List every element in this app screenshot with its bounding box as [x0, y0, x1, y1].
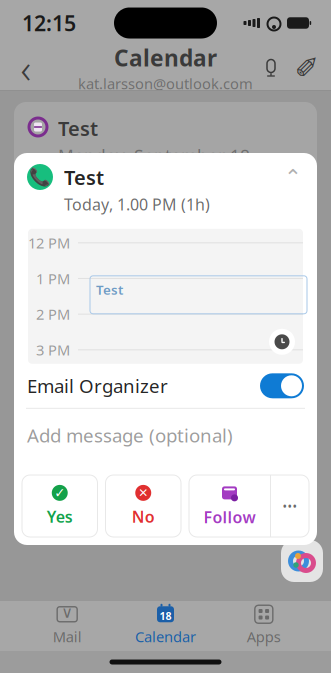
button[interactable]: Email Organizer — [14, 364, 317, 408]
staticText: Add message (optional) — [27, 423, 233, 448]
staticText: Here’s information you might find releva… — [28, 243, 304, 289]
staticText: 📞 — [29, 167, 51, 187]
button[interactable]: Follow — [189, 475, 270, 537]
staticText: Test — [64, 164, 104, 191]
staticText: 2 PM — [36, 304, 70, 324]
staticText: Meeting Insights — [28, 209, 206, 237]
staticText: 7:00 PM → 10:00 PM (3 hours) — [58, 194, 245, 240]
staticText: You’ll only see content you have access … — [28, 295, 288, 341]
staticText: kat.larsson@outlook.com — [78, 74, 253, 93]
button[interactable]: ✕ — [105, 475, 181, 537]
staticText: 12 PM — [28, 233, 70, 253]
button[interactable]: Propose new time — [268, 328, 296, 356]
button[interactable]: Dictate — [253, 48, 289, 88]
button[interactable]: Compose — [289, 48, 325, 88]
staticText: ••• — [282, 498, 297, 514]
staticText: Today, 1.00 PM (1h) — [64, 194, 210, 215]
button[interactable]: 18 — [116, 606, 215, 646]
staticText: 1 PM — [36, 269, 70, 288]
staticText: Follow — [203, 506, 255, 528]
button[interactable]: Apps — [215, 606, 313, 646]
staticText: ‹ — [20, 41, 31, 94]
staticText: 18 — [159, 609, 171, 623]
staticText: Yes — [47, 506, 73, 527]
staticText: Monday, September 18, 2020 — [58, 145, 255, 191]
staticText: Calendar — [114, 43, 217, 73]
staticText: Test — [96, 281, 123, 298]
staticText: No — [132, 506, 155, 527]
button[interactable]: Copilot — [281, 540, 323, 582]
staticText: Test — [58, 115, 98, 142]
staticText: Calendar — [135, 627, 196, 646]
staticText: 3 PM — [36, 340, 70, 360]
staticText: ✓ — [54, 485, 65, 500]
staticText: Apps — [247, 627, 281, 646]
staticText: Email Organizer — [27, 373, 168, 398]
button[interactable]: More options — [271, 475, 309, 537]
staticText: ✕ — [138, 486, 148, 500]
staticText: 12:15 — [22, 9, 76, 37]
staticText: ⌃ — [284, 165, 302, 189]
button[interactable]: ✓ — [22, 475, 97, 537]
button[interactable]: Back — [6, 48, 46, 88]
staticText: ✐ — [294, 51, 319, 85]
button[interactable]: Collapse — [279, 164, 307, 190]
button[interactable]: ∨ — [18, 606, 116, 646]
staticText: ∨ — [61, 603, 73, 621]
staticText: Mail — [53, 627, 82, 646]
